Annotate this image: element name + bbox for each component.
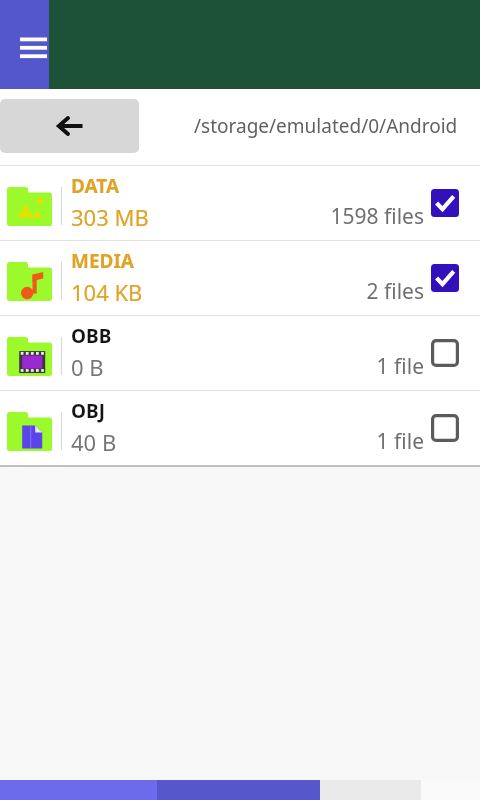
staticText: 104 KB bbox=[71, 277, 143, 307]
button[interactable]: Back bbox=[0, 99, 139, 153]
staticText: OBJ bbox=[71, 398, 105, 424]
button[interactable]: Selected bbox=[431, 264, 459, 292]
button[interactable]: Selected bbox=[431, 189, 459, 217]
staticText: 40 B bbox=[71, 427, 117, 457]
staticText: 303 MB bbox=[71, 202, 149, 232]
button[interactable]: DATA bbox=[0, 166, 480, 240]
staticText: /storage/emulated/0/Android bbox=[194, 113, 458, 139]
button[interactable]: MEDIA bbox=[0, 241, 480, 315]
button[interactable]: Not selected bbox=[431, 339, 459, 367]
button[interactable]: Open navigation menu bbox=[0, 0, 49, 89]
staticText: 1 file bbox=[224, 427, 424, 456]
button[interactable]: Not selected bbox=[431, 414, 459, 442]
staticText: 1 file bbox=[224, 352, 424, 381]
staticText: MEDIA bbox=[71, 248, 135, 274]
staticText: OBB bbox=[71, 323, 112, 349]
staticText: 2 files bbox=[224, 277, 424, 306]
staticText: 0 B bbox=[71, 352, 104, 382]
button[interactable]: OBJ bbox=[0, 391, 480, 465]
staticText: 1598 files bbox=[224, 202, 424, 231]
staticText: DATA bbox=[71, 173, 120, 199]
button[interactable]: OBB bbox=[0, 316, 480, 390]
